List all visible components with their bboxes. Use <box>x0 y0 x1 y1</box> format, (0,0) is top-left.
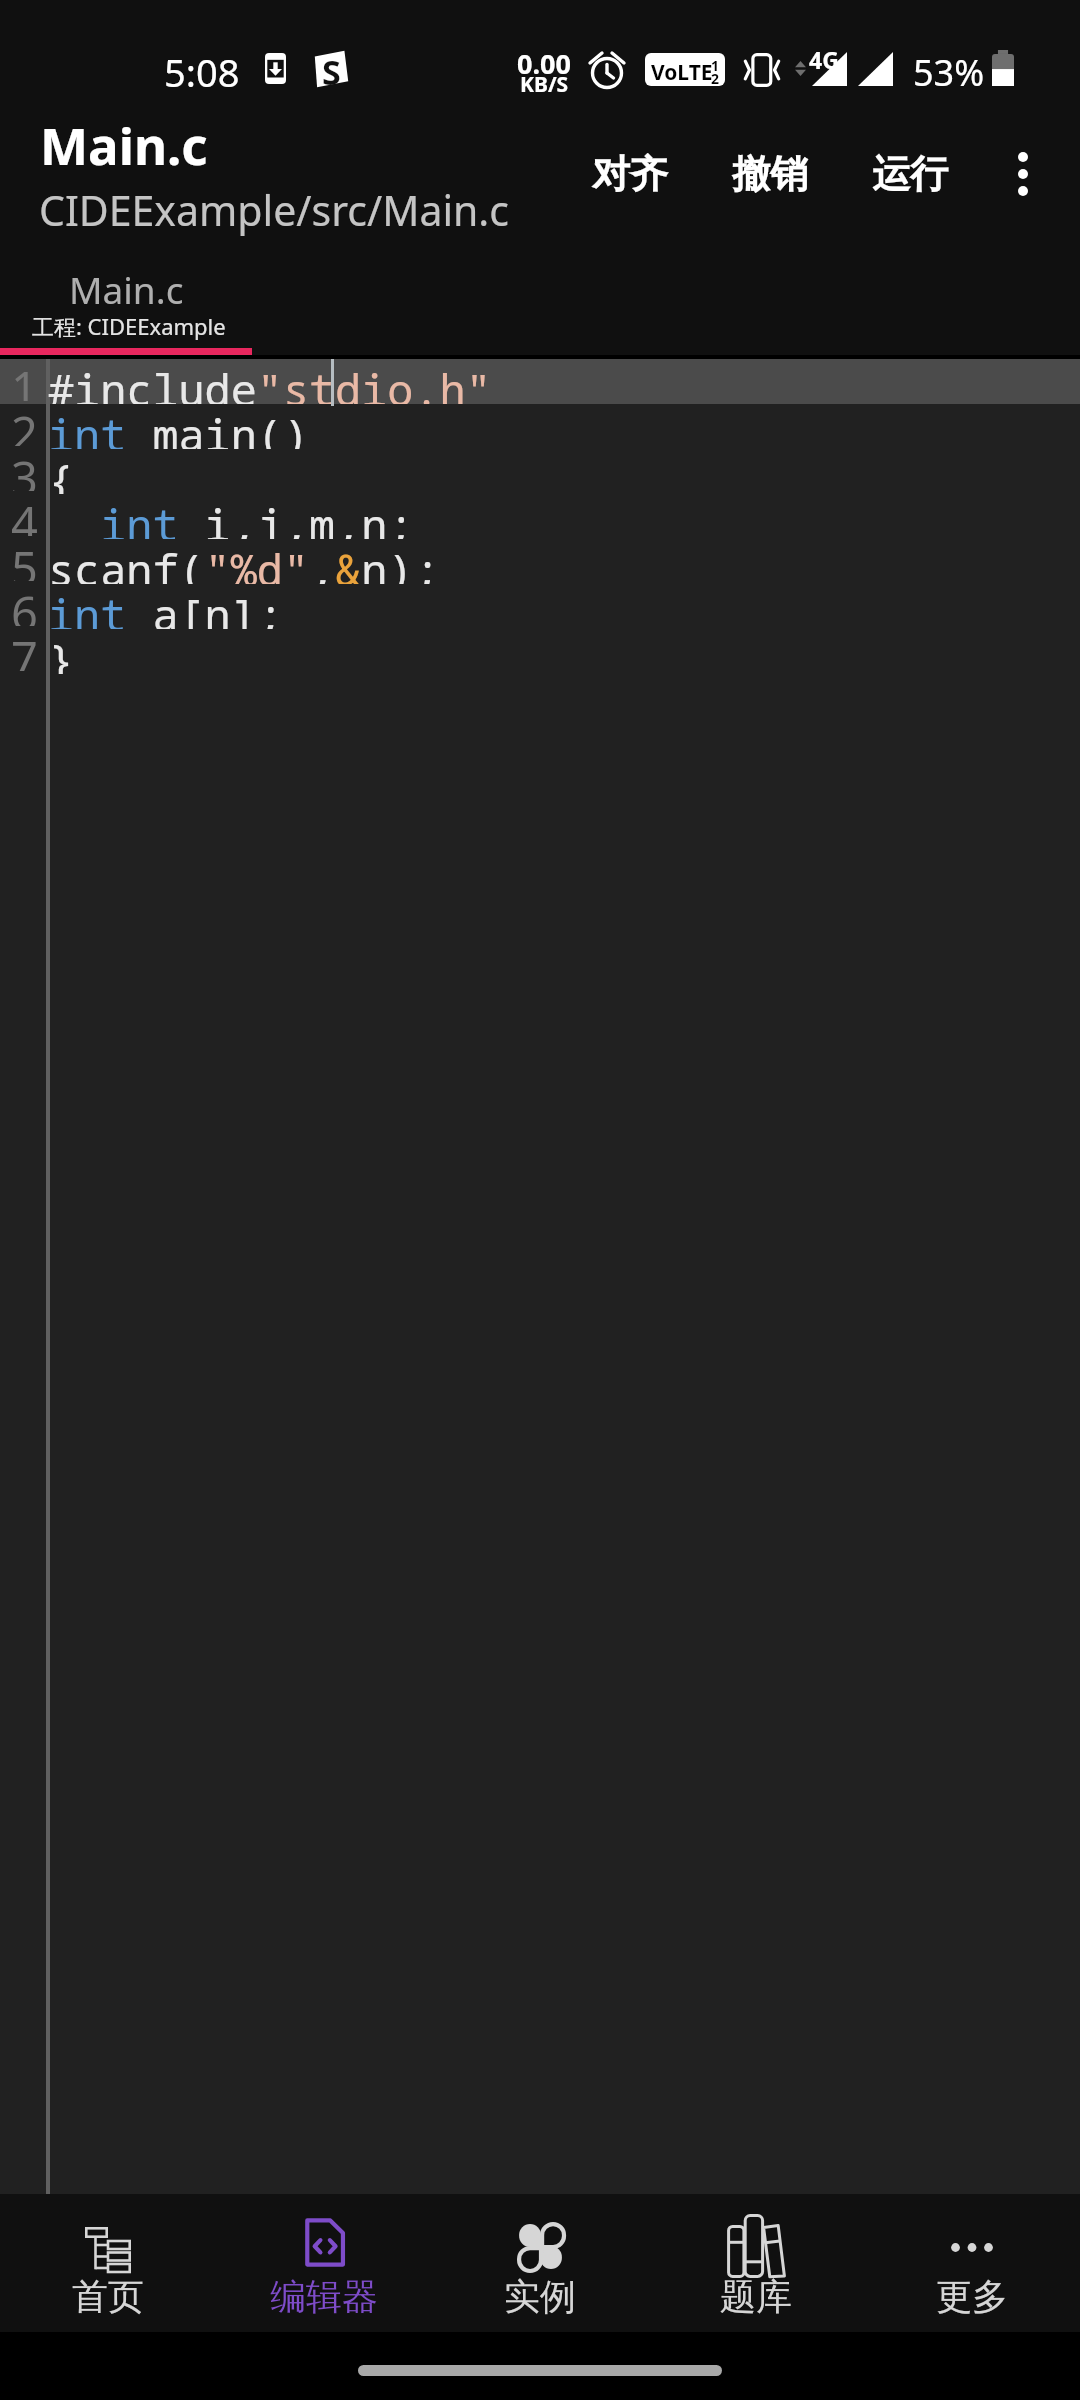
staticText: int main() <box>48 404 309 449</box>
staticText: 首页 <box>72 2274 144 2319</box>
staticText: #include"stdio.h" <box>48 359 492 404</box>
staticText: VoLTE <box>651 58 713 86</box>
staticText: 1 <box>711 56 720 75</box>
button[interactable]: 4 <box>0 494 1080 539</box>
staticText: 5 <box>11 536 38 581</box>
staticText: KB/S <box>520 70 569 99</box>
staticText: 撤销 <box>732 150 808 198</box>
staticText: CIDEExample/src/Main.c <box>39 182 509 238</box>
button[interactable]: 2 <box>0 404 1080 449</box>
staticText: int a[n]; <box>48 584 283 629</box>
staticText: S <box>322 49 341 87</box>
staticText: 编辑器 <box>270 2274 378 2319</box>
staticText: scanf("%d",&n); <box>48 539 440 584</box>
staticText: 2 <box>11 401 38 446</box>
staticText: 运行 <box>872 150 948 198</box>
staticText: 7 <box>11 626 38 671</box>
staticText: 工程: CIDEExample <box>32 311 226 341</box>
staticText: Main.c <box>69 264 184 314</box>
button[interactable]: 5 <box>0 539 1080 584</box>
staticText: 1 <box>11 356 38 401</box>
staticText: int i,j,m,n; <box>48 494 414 539</box>
button[interactable]: More options <box>992 136 1054 212</box>
button[interactable]: 撤销 <box>705 134 835 214</box>
button[interactable]: Main.c <box>0 249 252 355</box>
staticText: 更多 <box>936 2274 1008 2319</box>
button[interactable]: 实例 <box>432 2194 648 2332</box>
button[interactable]: 6 <box>0 584 1080 629</box>
staticText: 实例 <box>504 2274 576 2319</box>
staticText: 题库 <box>720 2274 792 2319</box>
staticText: 2 <box>711 69 720 86</box>
staticText: 对齐 <box>592 150 668 198</box>
staticText: 4G <box>809 44 839 75</box>
staticText: 6 <box>11 581 38 626</box>
button[interactable]: 3 <box>0 449 1080 494</box>
staticText: 53% <box>913 48 985 97</box>
staticText: 4 <box>11 491 38 536</box>
button[interactable]: 1 <box>0 359 1080 404</box>
staticText: 5:08 <box>164 46 240 98</box>
staticText: { <box>48 449 75 494</box>
button[interactable]: 编辑器 <box>216 2194 432 2332</box>
button[interactable]: 首页 <box>0 2194 216 2332</box>
button[interactable]: 更多 <box>864 2194 1080 2332</box>
staticText: } <box>48 629 75 674</box>
button[interactable]: 对齐 <box>565 134 695 214</box>
staticText: 3 <box>11 446 38 491</box>
staticText: 0.00 <box>517 45 571 82</box>
button[interactable]: 题库 <box>648 2194 864 2332</box>
button[interactable]: 运行 <box>845 134 975 214</box>
button[interactable]: 7 <box>0 629 1080 674</box>
staticText: Main.c <box>40 110 208 179</box>
